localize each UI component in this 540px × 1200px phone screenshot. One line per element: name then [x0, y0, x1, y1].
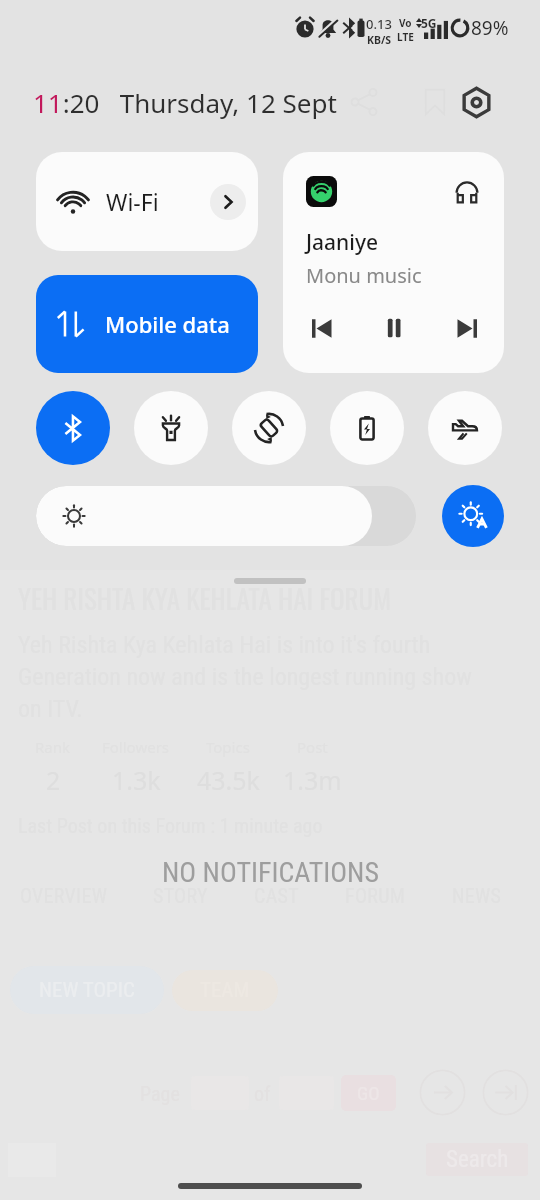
button[interactable]: Output device	[283, 152, 504, 373]
button[interactable]: Airplane mode	[428, 391, 502, 465]
staticText: NEW TOPIC	[39, 978, 135, 1003]
button[interactable]: Mobile data	[36, 275, 258, 373]
staticText: Mobile data	[105, 309, 230, 339]
button[interactable]: Pause	[379, 313, 409, 343]
staticText: 0.13	[366, 15, 392, 33]
staticText: Monu music	[306, 262, 422, 289]
staticText: YEH RISHTA KYA KEHLATA HAI FORUM	[18, 578, 391, 618]
button[interactable]: Settings	[456, 82, 496, 122]
staticText: LTE	[397, 30, 414, 44]
staticText: Jaaniye	[306, 228, 379, 257]
staticText: 11:20 Thursday, 12 Sept	[33, 85, 337, 120]
staticText: 5G	[421, 15, 437, 31]
staticText: Wi-Fi	[106, 186, 159, 217]
staticText: 89%	[471, 15, 509, 41]
button[interactable]: Wi-Fi	[36, 152, 258, 251]
button[interactable]: Battery saver	[330, 391, 404, 465]
button[interactable]: Wi-Fi settings	[210, 184, 246, 220]
button[interactable]: Bluetooth	[36, 391, 110, 465]
button[interactable]: Auto brightness	[442, 485, 504, 547]
button[interactable]	[36, 486, 416, 546]
staticText: Vo	[399, 16, 412, 30]
staticText: Search	[446, 1146, 509, 1173]
staticText: KB/S	[367, 33, 392, 47]
staticText: NO NOTIFICATIONS	[162, 856, 379, 889]
button[interactable]: Previous	[306, 313, 336, 343]
button[interactable]: Output device	[452, 177, 482, 207]
button[interactable]: Next	[452, 313, 482, 343]
button[interactable]: Auto rotate	[232, 391, 306, 465]
button[interactable]: Flashlight	[134, 391, 208, 465]
